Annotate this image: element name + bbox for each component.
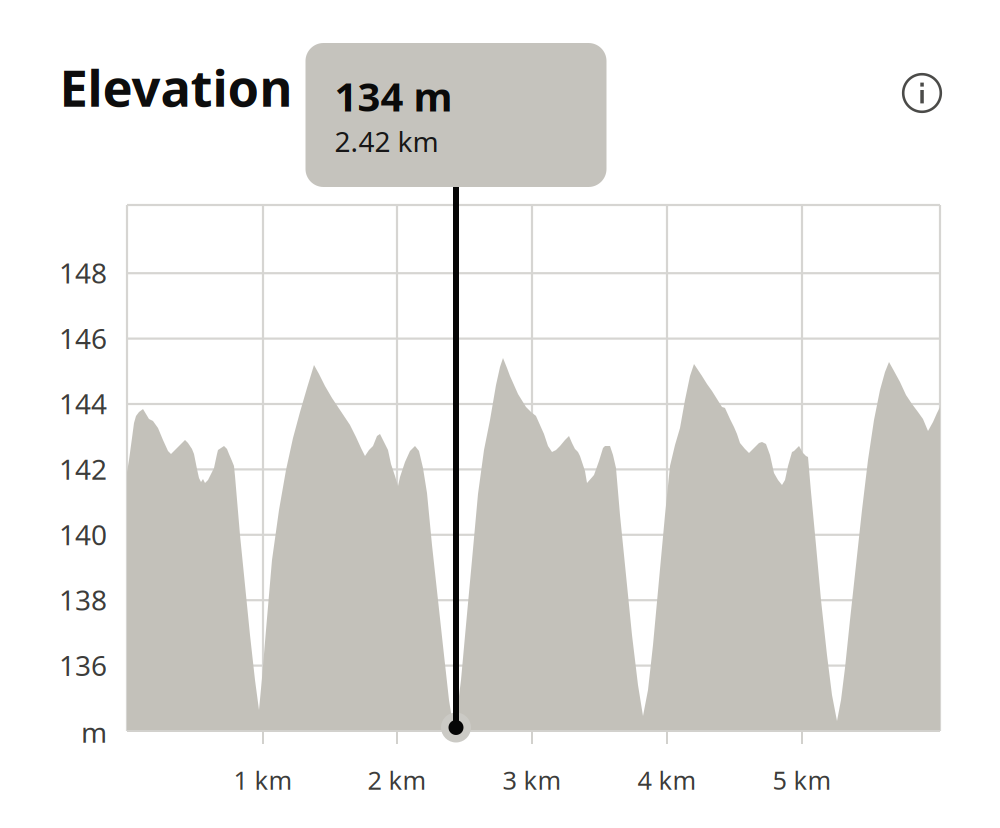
button[interactable]: Elevation profile, 134 m at 2.42 km	[0, 0, 1000, 828]
staticText: 3 km	[502, 763, 561, 797]
staticText: 142	[59, 450, 107, 487]
staticText: 138	[59, 581, 107, 618]
staticText: 144	[59, 385, 107, 422]
staticText: Elevation	[59, 53, 292, 121]
staticText: 148	[59, 254, 107, 291]
staticText: 136	[59, 646, 107, 684]
staticText: 140	[59, 516, 107, 553]
button[interactable]: Info	[891, 62, 953, 124]
staticText: 5 km	[772, 763, 831, 797]
staticText: m	[81, 713, 107, 751]
staticText: 2 km	[367, 763, 426, 797]
staticText: 146	[59, 319, 107, 357]
staticText: 1 km	[233, 763, 292, 797]
staticText: 2.42 km	[334, 122, 438, 160]
staticText: 4 km	[637, 763, 696, 797]
staticText: 134 m	[334, 69, 452, 122]
